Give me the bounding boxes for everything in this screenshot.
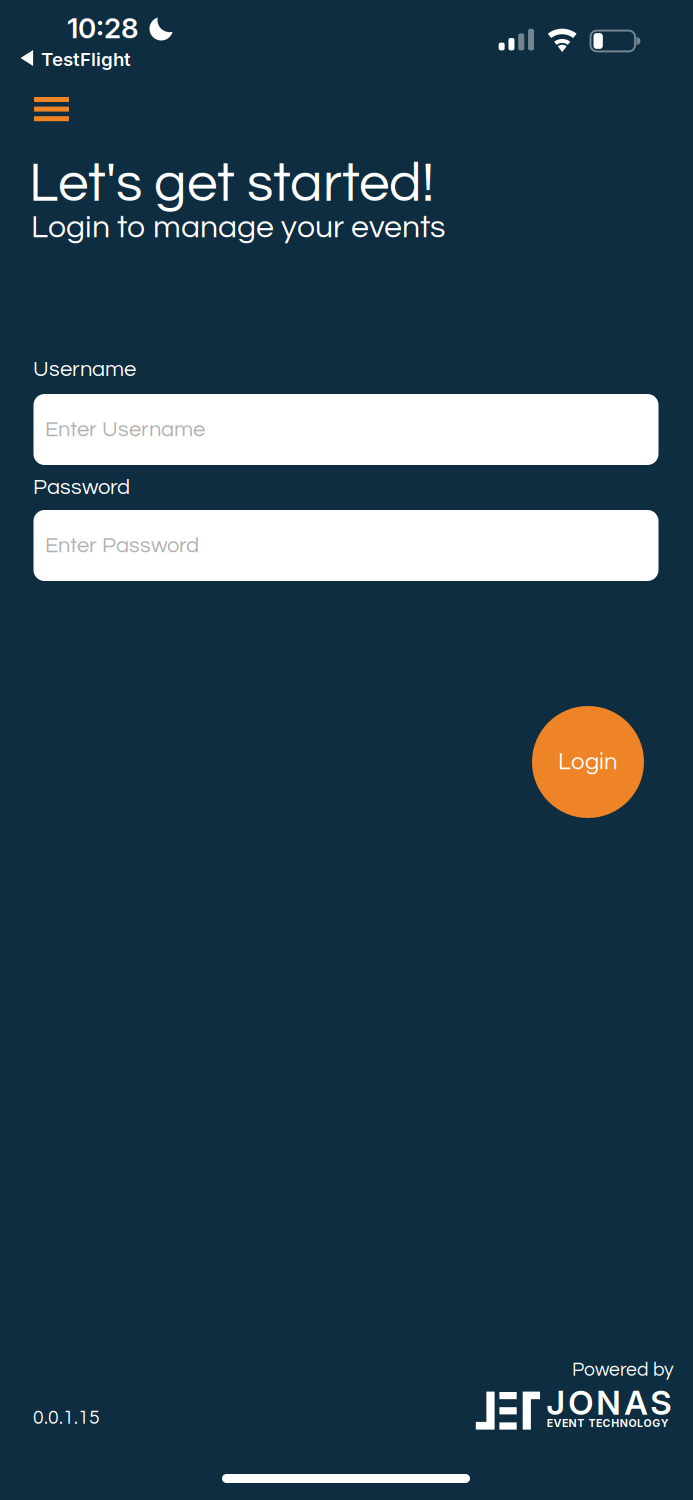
staticText: Login <box>558 750 618 774</box>
staticText: Password <box>33 476 130 499</box>
staticText: Let's get started! <box>29 156 434 212</box>
staticText: 10:28 <box>67 11 139 45</box>
staticText: Enter Username <box>45 418 205 441</box>
staticText: 0.0.1.15 <box>33 1408 100 1428</box>
staticText: TestFlight <box>41 48 131 71</box>
staticText: JONAS <box>546 1382 671 1423</box>
button[interactable]: Menu <box>12 77 91 141</box>
staticText: Username <box>33 358 136 381</box>
button[interactable]: Login <box>532 706 644 818</box>
staticText: EVENT TECHNOLOGY <box>547 1417 669 1430</box>
staticText: Login to manage your events <box>31 211 445 244</box>
staticText: Powered by <box>572 1360 674 1380</box>
staticText: Enter Password <box>45 534 199 557</box>
